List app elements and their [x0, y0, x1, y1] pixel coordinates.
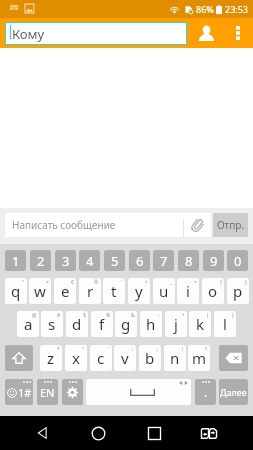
button[interactable]: Contacts: [191, 18, 222, 48]
button[interactable]: q: [5, 278, 27, 304]
staticText: &: [131, 312, 135, 319]
staticText: EN: [40, 385, 55, 400]
staticText: o: [208, 281, 218, 301]
button[interactable]: e: [54, 278, 76, 304]
staticText: j: [174, 314, 178, 334]
staticText: x: [72, 348, 80, 368]
staticText: (: [207, 312, 209, 319]
staticText: 7: [160, 252, 168, 270]
staticText: _: [170, 279, 173, 286]
button[interactable]: d: [66, 311, 88, 337]
staticText: {: [220, 279, 222, 286]
staticText: ×: [46, 279, 49, 286]
button[interactable]: j: [165, 311, 187, 337]
button[interactable]: Backspace: [219, 345, 248, 371]
button[interactable]: 7: [153, 250, 174, 271]
button[interactable]: k: [189, 311, 211, 337]
staticText: Далее: [220, 386, 247, 398]
button[interactable]: x: [65, 345, 87, 371]
button[interactable]: g: [115, 311, 137, 337]
staticText: b: [145, 348, 155, 368]
staticText: 6: [136, 252, 144, 270]
staticText: }: [245, 279, 247, 286]
staticText: 1#: [18, 385, 32, 400]
button[interactable]: Далее: [219, 379, 248, 405]
button[interactable]: 0: [227, 250, 248, 271]
button[interactable]: Symbols: [5, 379, 33, 405]
staticText: f: [99, 314, 105, 334]
staticText: t: [111, 281, 117, 301]
button[interactable]: Space: [86, 379, 191, 405]
button[interactable]: .: [195, 379, 216, 405]
button[interactable]: 5: [104, 250, 125, 271]
button[interactable]: Attach: [184, 213, 211, 237]
button[interactable]: Split screen: [182, 416, 236, 450]
staticText: Написать сообщение: [12, 218, 116, 232]
button[interactable]: i: [177, 278, 199, 304]
staticText: 9: [210, 252, 218, 270]
staticText: y: [135, 281, 143, 301]
button[interactable]: h: [140, 311, 162, 337]
button[interactable]: Back: [14, 416, 71, 450]
button[interactable]: Recents: [126, 416, 182, 450]
button[interactable]: o: [202, 278, 224, 304]
staticText: =: [194, 279, 197, 286]
button[interactable]: s: [41, 311, 63, 337]
staticText: ?: [205, 346, 208, 353]
button[interactable]: 9: [203, 250, 224, 271]
staticText: @: [32, 312, 37, 319]
button[interactable]: Кому: [6, 23, 186, 44]
button[interactable]: 3: [55, 250, 76, 271]
button[interactable]: c: [90, 345, 112, 371]
button[interactable]: u: [153, 278, 175, 304]
button[interactable]: l: [214, 311, 236, 337]
button[interactable]: a: [17, 311, 39, 337]
button[interactable]: 1: [5, 250, 26, 271]
staticText: %: [106, 312, 111, 319]
button[interactable]: 8: [178, 250, 199, 271]
staticText: v: [121, 348, 129, 368]
button[interactable]: m: [188, 345, 210, 371]
staticText: k: [196, 314, 205, 334]
staticText: `: [121, 279, 123, 286]
button[interactable]: 4: [79, 250, 100, 271]
staticText: °: [22, 279, 25, 286]
staticText: c: [97, 348, 105, 368]
button[interactable]: Home: [71, 416, 126, 450]
staticText: m: [192, 348, 207, 368]
button[interactable]: v: [114, 345, 136, 371]
button[interactable]: Отпр.: [213, 213, 248, 237]
button[interactable]: 2: [30, 250, 51, 271]
staticText: i: [186, 281, 190, 301]
staticText: r: [87, 281, 94, 301]
staticText: Кому: [12, 25, 45, 43]
staticText: a: [24, 314, 33, 334]
button[interactable]: w: [29, 278, 51, 304]
button[interactable]: n: [164, 345, 186, 371]
button[interactable]: p: [227, 278, 249, 304]
staticText: #: [57, 312, 61, 319]
button[interactable]: z: [40, 345, 62, 371]
button[interactable]: Написать сообщение: [5, 213, 211, 237]
button[interactable]: More options: [225, 18, 250, 48]
button[interactable]: y: [128, 278, 150, 304]
staticText: d: [72, 314, 82, 334]
button[interactable]: EN: [37, 379, 58, 405]
staticText: Отпр.: [217, 218, 245, 232]
button[interactable]: 6: [129, 250, 150, 271]
button[interactable]: r: [79, 278, 101, 304]
staticText: 2: [37, 252, 45, 270]
staticText: z: [47, 348, 55, 368]
staticText: $: [83, 312, 86, 319]
staticText: !: [182, 346, 184, 353]
staticText: -: [158, 312, 160, 319]
button[interactable]: f: [91, 311, 113, 337]
button[interactable]: Settings: [62, 379, 83, 405]
button[interactable]: b: [139, 345, 161, 371]
staticText: ®: [94, 279, 99, 286]
staticText: u: [159, 281, 169, 301]
button[interactable]: Shift: [5, 345, 33, 371]
staticText: h: [146, 314, 156, 334]
button[interactable]: t: [103, 278, 125, 304]
staticText: €: [71, 279, 74, 286]
